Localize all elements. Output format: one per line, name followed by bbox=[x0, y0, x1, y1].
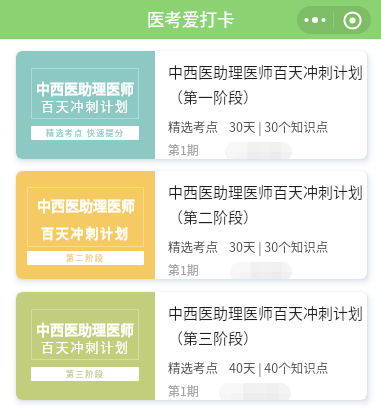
staticText: 中西医助理医师百天冲刺计划 bbox=[168, 61, 364, 83]
staticText: 百天冲刺计划 bbox=[41, 337, 130, 356]
staticText: 精选考点 bbox=[168, 237, 219, 255]
button[interactable]: 中西医助理医师 bbox=[16, 292, 367, 400]
staticText: 中西医助理医师百天冲刺计划 bbox=[168, 302, 364, 324]
staticText: （第二阶段） bbox=[168, 206, 259, 228]
staticText: 30天 | 30个知识点 bbox=[229, 117, 329, 135]
staticText: 医考爱打卡 bbox=[147, 6, 235, 31]
staticText: （第三阶段） bbox=[168, 327, 259, 349]
button[interactable]: More options and close bbox=[297, 6, 371, 34]
staticText: （第一阶段） bbox=[168, 86, 259, 108]
staticText: 中西医助理医师 bbox=[36, 319, 134, 339]
staticText: 百天冲刺计划 bbox=[41, 96, 130, 115]
staticText: 第1期 bbox=[168, 382, 199, 399]
button[interactable]: 中西医助理医师 bbox=[16, 51, 367, 159]
staticText: 30天 | 30个知识点 bbox=[229, 237, 329, 255]
staticText: 中西医助理医师 bbox=[37, 195, 135, 215]
staticText: 第1期 bbox=[168, 261, 199, 278]
button[interactable]: 中西医助理医师 bbox=[16, 171, 367, 279]
staticText: 精选考点 快速提分 bbox=[46, 127, 125, 139]
staticText: 第1期 bbox=[168, 141, 199, 158]
staticText: 中西医助理医师百天冲刺计划 bbox=[168, 181, 364, 203]
staticText: 精选考点 bbox=[168, 358, 219, 376]
staticText: 第二阶段 bbox=[66, 252, 105, 264]
staticText: 40天 | 40个知识点 bbox=[229, 358, 329, 376]
staticText: 精选考点 bbox=[168, 117, 219, 135]
staticText: 百天冲刺计划 bbox=[41, 223, 130, 242]
staticText: 第三阶段 bbox=[66, 368, 105, 380]
staticText: 中西医助理医师 bbox=[36, 78, 134, 98]
